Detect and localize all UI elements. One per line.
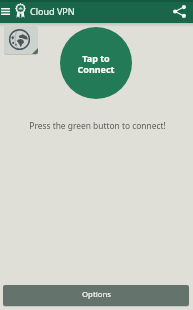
button[interactable]: Tap to Connect xyxy=(60,27,132,99)
button[interactable]: Menu xyxy=(0,0,11,23)
button[interactable]: Share xyxy=(170,0,193,23)
staticText: Cloud VPN xyxy=(30,5,75,17)
staticText: Options xyxy=(82,289,111,300)
button[interactable]: Options xyxy=(3,285,189,306)
button[interactable]: Select server location xyxy=(4,26,38,54)
staticText: Tap to Connect xyxy=(77,52,115,75)
staticText: Press the green button to connect! xyxy=(29,120,166,131)
